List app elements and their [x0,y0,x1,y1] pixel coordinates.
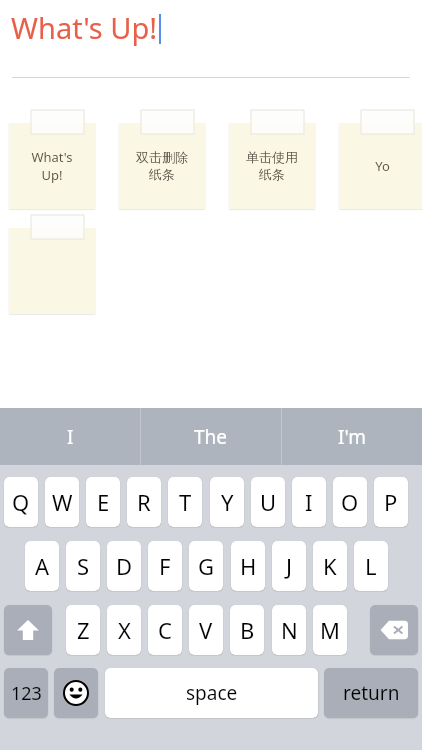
staticText: D [116,551,133,581]
staticText: X [118,615,131,645]
button[interactable]: Shift [4,605,52,655]
button[interactable]: R [127,477,161,527]
button[interactable]: Emoji [54,668,98,718]
button[interactable]: U [251,477,285,527]
staticText: R [137,487,151,517]
staticText: C [158,615,172,645]
button[interactable]: F [148,541,182,591]
button[interactable]: Z [66,605,100,655]
button[interactable]: I [292,477,326,527]
button[interactable]: H [231,541,265,591]
button[interactable]: 单击使用 纸条 [229,123,315,209]
button[interactable]: J [272,541,306,591]
button[interactable]: Delete [370,605,418,655]
button[interactable]: Yo [339,123,422,209]
button[interactable]: return [324,668,418,718]
staticText: T [179,487,192,517]
button[interactable]: Q [4,477,38,527]
button[interactable]: X [107,605,141,655]
button[interactable]: W [45,477,79,527]
button[interactable]: E [86,477,120,527]
button[interactable]: S [66,541,100,591]
staticText: N [281,615,298,645]
button[interactable]: C [148,605,182,655]
staticText: F [159,551,171,581]
staticText: What's Up! [11,8,158,47]
button[interactable]: space [105,668,318,718]
staticText: 123 [11,681,42,706]
button[interactable]: L [354,541,388,591]
staticText: K [323,551,337,581]
staticText: What's Up! [31,148,73,184]
button[interactable]: M [313,605,347,655]
staticText: I'm [338,424,366,450]
staticText: space [186,680,238,706]
button[interactable]: What's Up! [11,8,161,47]
staticText: return [343,680,400,706]
button[interactable]: B [230,605,264,655]
button[interactable]: G [189,541,223,591]
staticText: H [240,551,257,581]
button[interactable]: N [272,605,306,655]
button[interactable]: I [0,408,140,465]
button[interactable]: The [141,408,281,465]
staticText: 单击使用 纸条 [246,149,298,183]
staticText: 双击删除 纸条 [136,149,188,183]
staticText: The [194,424,228,450]
staticText: Yo [375,157,390,175]
button[interactable]: T [168,477,202,527]
staticText: J [286,551,293,581]
staticText: V [199,615,213,645]
staticText: A [35,551,50,581]
staticText: G [198,551,215,581]
button[interactable]: A [25,541,59,591]
staticText: E [97,487,110,517]
staticText: I [305,487,313,517]
button[interactable] [9,228,95,314]
button[interactable]: What's Up! [9,123,95,209]
button[interactable]: 123 [4,668,48,718]
staticText: L [365,551,377,581]
staticText: B [240,615,255,645]
staticText: Q [12,487,30,517]
staticText: O [341,487,359,517]
staticText: W [52,487,73,517]
staticText: U [260,487,277,517]
button[interactable]: D [107,541,141,591]
button[interactable]: P [374,477,408,527]
staticText: S [77,551,90,581]
staticText: Y [221,487,234,517]
staticText: P [384,487,398,517]
button[interactable]: 双击删除 纸条 [119,123,205,209]
staticText: Z [77,615,90,645]
button[interactable]: Y [210,477,244,527]
button[interactable]: V [189,605,223,655]
staticText: M [320,615,340,645]
button[interactable]: O [333,477,367,527]
button[interactable]: K [313,541,347,591]
button[interactable]: I'm [282,408,422,465]
staticText: I [67,424,74,450]
